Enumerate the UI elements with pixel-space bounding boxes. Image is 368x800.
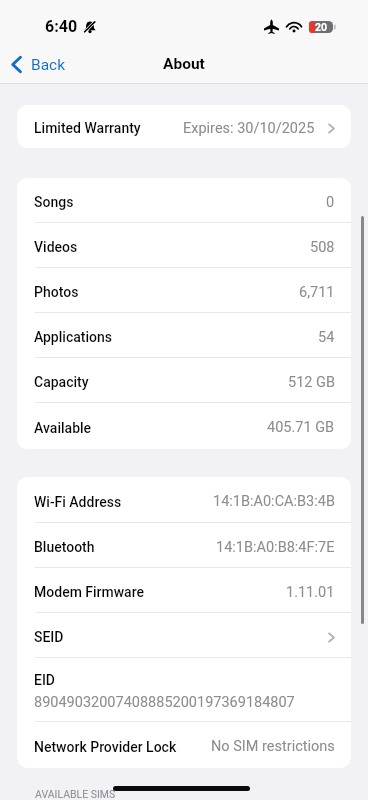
staticText: SEID [34, 629, 64, 645]
staticText: Network Provider Lock [34, 739, 177, 755]
staticText: Limited Warranty [34, 120, 141, 136]
staticText: Wi-Fi Address [34, 494, 122, 510]
staticText: No SIM restrictions [211, 738, 335, 755]
staticText: 89049032007408885200197369184807 [34, 694, 295, 711]
staticText: Applications [34, 329, 113, 345]
button[interactable]: SEID [17, 613, 351, 658]
button[interactable]: Capacity [17, 358, 351, 403]
button[interactable]: Network Provider Lock [17, 722, 351, 768]
button[interactable]: Photos [17, 268, 351, 313]
button[interactable]: Videos [17, 223, 351, 268]
staticText: Capacity [34, 374, 89, 390]
staticText: Videos [34, 239, 78, 255]
button[interactable]: Available [17, 403, 351, 449]
staticText: EID [34, 672, 56, 688]
staticText: Back [31, 56, 66, 74]
staticText: AVAILABLE SIMS [35, 788, 116, 800]
staticText: 1.11.01 [286, 584, 335, 601]
staticText: 14:1B:A0:B8:4F:7E [216, 539, 335, 556]
staticText: 0 [326, 194, 335, 211]
staticText: 405.71 GB [267, 419, 335, 436]
button[interactable]: Wi-Fi Address [17, 477, 351, 523]
staticText: Available [34, 420, 92, 436]
staticText: 54 [318, 329, 335, 346]
staticText: 20 [315, 21, 328, 33]
staticText: 6:40 [45, 17, 78, 36]
button[interactable]: EID [17, 658, 351, 722]
button[interactable]: Modem Firmware [17, 568, 351, 613]
staticText: Songs [34, 194, 74, 210]
staticText: About [163, 55, 205, 73]
button[interactable]: Songs [17, 178, 351, 223]
button[interactable]: Bluetooth [17, 523, 351, 568]
staticText: 512 GB [288, 374, 335, 391]
button[interactable]: Limited Warranty [17, 105, 351, 148]
staticText: 6,711 [299, 284, 335, 301]
staticText: Expires: 30/10/2025 [183, 120, 315, 137]
staticText: 508 [310, 239, 335, 256]
button[interactable]: Back [11, 55, 66, 74]
button[interactable]: Applications [17, 313, 351, 358]
staticText: Modem Firmware [34, 584, 145, 600]
staticText: 14:1B:A0:CA:B3:4B [213, 493, 335, 510]
staticText: Photos [34, 284, 79, 300]
staticText: Bluetooth [34, 539, 95, 555]
